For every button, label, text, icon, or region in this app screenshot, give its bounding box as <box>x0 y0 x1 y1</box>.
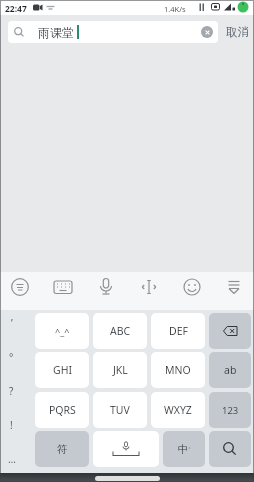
staticText: … <box>8 452 16 466</box>
button[interactable]: ! <box>0 410 23 440</box>
staticText: ABC <box>110 324 131 338</box>
staticText: ʼ <box>189 445 191 455</box>
staticText: TUV <box>110 403 130 417</box>
button[interactable]: MNO <box>151 352 205 388</box>
staticText: PQRS <box>49 403 76 417</box>
staticText: 1.4K/s <box>164 4 186 14</box>
staticText: ’ <box>11 316 13 330</box>
staticText: JKL <box>113 363 128 377</box>
staticText: ! <box>10 418 13 432</box>
button[interactable] <box>10 277 30 297</box>
staticText: 123 <box>222 404 239 417</box>
staticText: 取消 <box>226 25 249 39</box>
staticText: ab <box>224 363 237 377</box>
button[interactable]: ABC <box>93 313 147 349</box>
button[interactable]: ab <box>209 352 251 388</box>
button[interactable]: 雨课堂 <box>8 21 218 43</box>
button[interactable]: ? <box>0 376 23 406</box>
button[interactable]: ^_^ <box>35 313 89 349</box>
button[interactable]: 123 <box>209 392 251 428</box>
staticText: 符 <box>57 443 68 456</box>
staticText: 22:47 <box>5 3 27 15</box>
button[interactable]: 取消 <box>226 25 249 39</box>
staticText: GHI <box>53 363 72 377</box>
staticText: MNO <box>165 363 191 377</box>
staticText: 雨课堂 <box>38 25 74 40</box>
button[interactable] <box>209 431 251 467</box>
button[interactable]: DEF <box>151 313 205 349</box>
button[interactable] <box>224 277 244 297</box>
staticText: ? <box>9 384 14 398</box>
button[interactable] <box>53 277 73 297</box>
button[interactable] <box>209 313 251 349</box>
button[interactable]: ° <box>0 342 23 372</box>
button[interactable]: TUV <box>93 392 147 428</box>
staticText: 中 <box>178 443 189 456</box>
button[interactable]: JKL <box>93 352 147 388</box>
button[interactable]: … <box>0 444 23 474</box>
staticText: DEF <box>169 324 188 338</box>
button[interactable]: PQRS <box>35 392 89 428</box>
button[interactable] <box>201 26 213 38</box>
staticText: ^_^ <box>55 325 70 337</box>
button[interactable]: WXYZ <box>151 392 205 428</box>
button[interactable]: 符 <box>35 431 89 467</box>
button[interactable]: ’ <box>0 308 23 338</box>
staticText: ° <box>9 350 14 364</box>
button[interactable] <box>139 277 159 297</box>
button[interactable] <box>93 431 159 467</box>
button[interactable] <box>182 277 202 297</box>
button[interactable] <box>96 277 116 297</box>
button[interactable]: 中 <box>163 431 205 467</box>
staticText: WXYZ <box>164 403 192 417</box>
button[interactable]: GHI <box>35 352 89 388</box>
